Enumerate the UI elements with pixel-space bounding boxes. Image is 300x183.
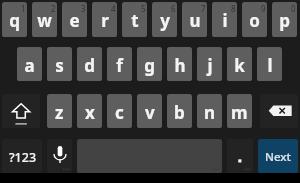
button[interactable]: ?123 xyxy=(2,139,42,173)
button[interactable]: w xyxy=(32,2,57,37)
button[interactable]: a xyxy=(17,47,42,81)
button[interactable]: p xyxy=(272,2,297,37)
staticText: z xyxy=(55,101,64,124)
button[interactable]: Delete xyxy=(260,94,298,128)
button[interactable]: l xyxy=(257,47,282,81)
staticText: g xyxy=(144,54,155,77)
button[interactable]: u xyxy=(182,2,207,37)
staticText: f xyxy=(116,54,123,77)
button[interactable]: c xyxy=(107,94,132,128)
staticText: y xyxy=(160,9,170,32)
staticText: n xyxy=(204,101,216,124)
button[interactable]: e xyxy=(62,2,87,37)
staticText: ?123 xyxy=(9,149,37,166)
button[interactable]: m xyxy=(227,94,252,128)
button[interactable]: o xyxy=(242,2,267,37)
staticText: a xyxy=(24,54,35,77)
staticText: 7 xyxy=(201,3,206,14)
button[interactable]: i xyxy=(212,2,237,37)
button[interactable]: z xyxy=(47,94,72,128)
staticText: 3 xyxy=(81,3,86,14)
button[interactable] xyxy=(227,139,253,173)
button[interactable]: x xyxy=(77,94,102,128)
button[interactable]: n xyxy=(197,94,222,128)
staticText: c xyxy=(115,101,124,124)
button[interactable]: Next xyxy=(258,139,298,173)
staticText: h xyxy=(174,54,186,77)
staticText: r xyxy=(101,9,109,32)
staticText: q xyxy=(9,9,20,32)
button[interactable]: b xyxy=(167,94,192,128)
staticText: j xyxy=(207,54,213,77)
button[interactable]: j xyxy=(197,47,222,81)
staticText: x xyxy=(85,101,95,124)
staticText: t xyxy=(131,9,139,32)
staticText: 2 xyxy=(51,3,56,14)
staticText: o xyxy=(249,9,260,32)
staticText: v xyxy=(145,101,155,124)
button[interactable]: y xyxy=(152,2,177,37)
staticText: 9 xyxy=(261,3,266,14)
staticText: l xyxy=(267,54,273,77)
staticText: w xyxy=(37,9,52,32)
button[interactable]: g xyxy=(137,47,162,81)
staticText: 4 xyxy=(111,3,116,14)
button[interactable]: s xyxy=(47,47,72,81)
staticText: e xyxy=(69,9,80,32)
button[interactable]: f xyxy=(107,47,132,81)
staticText: 5 xyxy=(141,3,146,14)
staticText: p xyxy=(279,9,290,32)
staticText: u xyxy=(189,9,201,32)
button[interactable]: q xyxy=(2,2,27,37)
button[interactable]: h xyxy=(167,47,192,81)
button[interactable]: r xyxy=(92,2,117,37)
button[interactable]: Voice input xyxy=(47,139,72,173)
button[interactable]: t xyxy=(122,2,147,37)
staticText: 0 xyxy=(291,3,296,14)
staticText: Next xyxy=(265,149,291,165)
staticText: 6 xyxy=(171,3,176,14)
staticText: k xyxy=(234,54,245,77)
staticText: s xyxy=(55,54,64,77)
button[interactable]: d xyxy=(77,47,102,81)
staticText: 1 xyxy=(21,3,26,14)
staticText: d xyxy=(84,54,95,77)
button[interactable]: v xyxy=(137,94,162,128)
staticText: 8 xyxy=(231,3,236,14)
staticText: m xyxy=(231,101,248,124)
button[interactable]: Shift xyxy=(2,94,40,128)
staticText: b xyxy=(174,101,185,124)
staticText: i xyxy=(222,9,228,32)
button[interactable]: k xyxy=(227,47,252,81)
